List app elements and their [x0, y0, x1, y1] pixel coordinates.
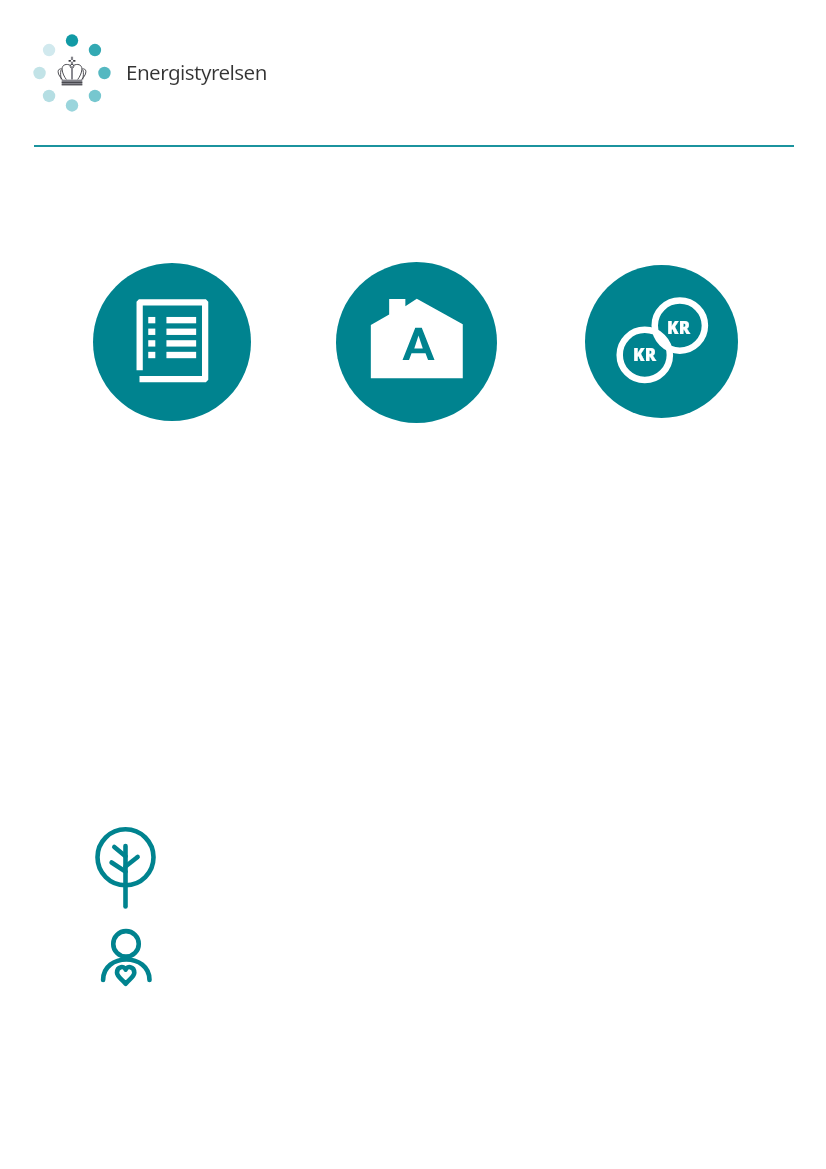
button[interactable]: Klima og miljø	[93, 824, 158, 910]
button[interactable]: Besparelse i kroner	[585, 265, 738, 418]
button[interactable]: Komfort og indeklima	[99, 927, 152, 989]
button[interactable]: Energimærkningsrapport	[93, 263, 251, 421]
button[interactable]: Energimærke A	[336, 262, 497, 423]
button[interactable]: Energistyrelsen logo	[23, 24, 121, 122]
staticText: KR	[633, 343, 657, 366]
staticText: KR	[667, 316, 691, 339]
staticText: Energistyrelsen	[126, 58, 267, 86]
